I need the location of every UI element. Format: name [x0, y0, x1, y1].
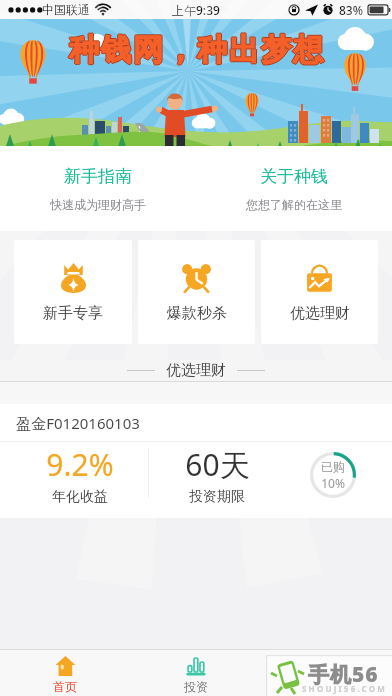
staticText: 爆款秒杀 [167, 304, 227, 323]
staticText: 年化收益 [52, 488, 108, 506]
staticText: 优选理财 [290, 304, 350, 323]
button[interactable]: 优选理财 [261, 240, 378, 344]
staticText: 新手指南 [64, 166, 132, 187]
staticText: 我的 [315, 679, 339, 694]
other: 我的 [317, 656, 337, 676]
staticText: 新手专享 [43, 304, 103, 323]
staticText: 种钱网，种出梦想 [69, 31, 325, 69]
button[interactable]: 盈金F0120160103 [0, 404, 392, 518]
staticText: 投资 [184, 679, 208, 694]
button[interactable]: 首页 [0, 649, 130, 696]
staticText: 种钱网，种出梦想 [68, 32, 324, 70]
staticText: 83% [339, 2, 363, 18]
staticText: 上午9:39 [172, 2, 220, 18]
staticText: 中国联通 [42, 2, 90, 17]
button[interactable]: 爆款秒杀 [138, 240, 255, 344]
staticText: 投资期限 [189, 488, 245, 506]
button[interactable]: 新手指南 [0, 146, 196, 231]
button[interactable]: 新手专享 [14, 240, 132, 344]
button[interactable]: 投资 [130, 649, 261, 696]
staticText: 60天 [185, 444, 250, 485]
staticText: 快速成为理财高手 [50, 197, 146, 212]
staticText: SHOUJI56.COM [302, 683, 387, 694]
staticText: 关于种钱 [260, 166, 328, 187]
staticText: 盈金F0120160103 [16, 413, 140, 433]
button[interactable]: 我的 [261, 649, 392, 696]
staticText: 已购 [321, 459, 345, 474]
other: 投资 [186, 656, 206, 676]
button[interactable]: 关于种钱 [196, 146, 392, 231]
staticText: 种钱网，种出梦想 [67, 31, 323, 69]
other: 首页 [55, 656, 75, 676]
staticText: 首页 [53, 679, 77, 694]
staticText: 优选理财 [166, 361, 226, 380]
staticText: 手机56 [308, 660, 379, 689]
staticText: 种钱网，种出梦想 [68, 31, 324, 69]
staticText: 种钱网，种出梦想 [68, 30, 324, 68]
button[interactable]: 种钱网，种出梦想 [0, 19, 392, 146]
staticText: 9.2% [46, 444, 114, 485]
staticText: 您想了解的在这里 [246, 197, 342, 212]
staticText: 10% [321, 475, 345, 491]
